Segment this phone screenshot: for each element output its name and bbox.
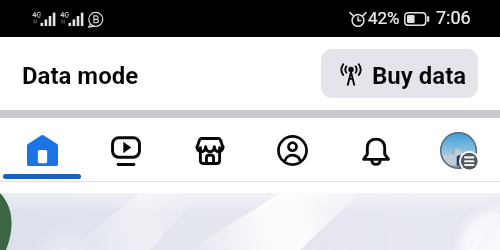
staticText: Data mode: [22, 62, 139, 90]
staticText: 42%: [368, 8, 400, 28]
button[interactable]: Menu: [417, 118, 500, 182]
button[interactable]: Profile: [251, 118, 334, 182]
button[interactable]: Marketplace: [168, 118, 251, 182]
button[interactable]: Home: [0, 118, 84, 182]
button[interactable]: Buy data: [321, 49, 478, 98]
button[interactable]: Video: [84, 118, 168, 182]
staticText: Buy data: [372, 62, 467, 90]
staticText: 7:06: [436, 7, 471, 28]
button[interactable]: Notifications: [334, 118, 417, 182]
